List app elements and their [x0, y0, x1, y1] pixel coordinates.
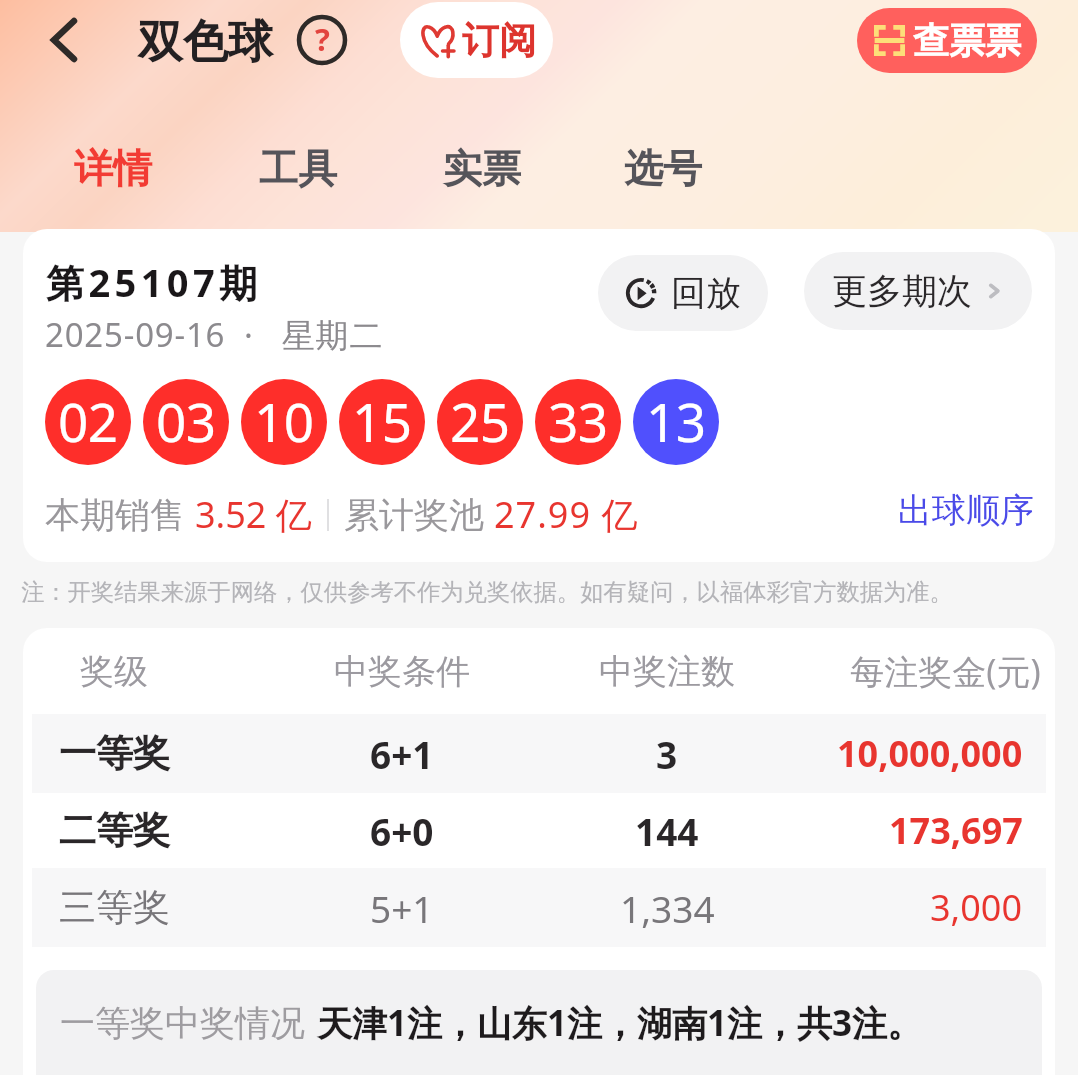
staticText: 二等奖 [59, 807, 170, 854]
staticText: 144 [635, 806, 699, 856]
staticText: 一等奖 [59, 730, 170, 777]
button[interactable]: 详情 [58, 132, 168, 204]
staticText: 奖级 [80, 650, 148, 693]
staticText: 一等奖中奖情况 [60, 1001, 305, 1045]
staticText: 10,000,000 [837, 729, 1023, 778]
staticText: 详情 [74, 144, 152, 193]
button[interactable]: 双色球 [138, 14, 273, 71]
staticText: 5+1 [370, 883, 434, 933]
button[interactable]: 查票票 [857, 8, 1037, 73]
staticText: 33 [548, 385, 608, 457]
staticText: 173,697 [889, 806, 1023, 855]
staticText: 累计奖池 [344, 493, 484, 537]
staticText: 实票 [443, 144, 521, 193]
button[interactable]: Help [288, 6, 356, 74]
staticText: 中奖注数 [599, 650, 735, 693]
staticText: 第25107期 [46, 256, 262, 308]
staticText: 1,334 [620, 883, 715, 933]
staticText: 15 [352, 385, 412, 457]
staticText: 10 [254, 385, 314, 457]
staticText: 本期销售 [45, 493, 185, 537]
staticText: 3.52 亿 [195, 490, 312, 539]
staticText: 三等奖 [59, 884, 170, 931]
staticText: 2025-09-16 · 星期二 [45, 312, 384, 357]
staticText: ? [315, 18, 330, 60]
button[interactable]: 回放 [598, 255, 768, 331]
staticText: 6+1 [370, 729, 434, 779]
staticText: 中奖条件 [334, 650, 470, 693]
staticText: 出球顺序 [898, 489, 1034, 532]
button[interactable]: 实票 [427, 132, 537, 204]
button[interactable]: Back [26, 2, 102, 78]
button[interactable]: 选号 [608, 132, 718, 204]
staticText: 订阅 [462, 17, 536, 64]
staticText: 更多期次 [832, 269, 972, 313]
staticText: 25 [450, 385, 510, 457]
staticText: 每注奖金(元) [850, 648, 1041, 694]
staticText: 3,000 [930, 883, 1023, 932]
button[interactable]: 工具 [243, 132, 353, 204]
staticText: 3 [656, 729, 678, 779]
staticText: 天津1注，山东1注，湖南1注，共3注。 [317, 999, 923, 1047]
staticText: 工具 [259, 144, 337, 193]
staticText: 查票票 [913, 18, 1021, 63]
staticText: 13 [646, 385, 706, 457]
staticText: 注：开奖结果来源于网络，仅供参考不作为兑奖依据。如有疑问，以福体彩官方数据为准。 [21, 578, 953, 607]
button[interactable]: 订阅 [400, 2, 553, 78]
staticText: 03 [156, 385, 216, 457]
staticText: 02 [58, 385, 118, 457]
staticText: 选号 [624, 144, 702, 193]
button[interactable]: 更多期次 [804, 252, 1032, 330]
staticText: 双色球 [138, 14, 273, 71]
staticText: 回放 [671, 271, 741, 315]
staticText: 27.99 亿 [494, 490, 639, 539]
button[interactable]: 出球顺序 [895, 487, 1037, 533]
staticText: 6+0 [370, 806, 434, 856]
